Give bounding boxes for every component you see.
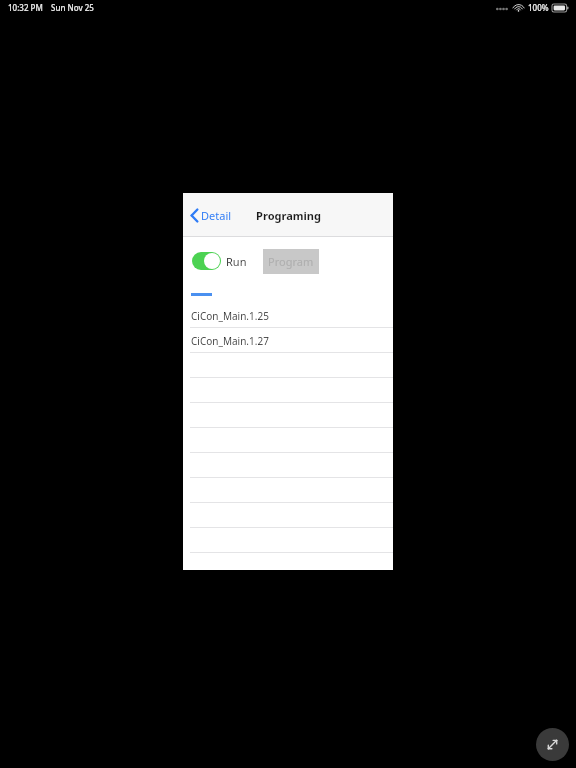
button[interactable]: Program — [263, 249, 319, 274]
button[interactable]: Detail — [187, 204, 235, 227]
button[interactable]: CiCon_Main.1.27 — [183, 328, 393, 353]
button[interactable] — [183, 528, 393, 553]
button[interactable] — [183, 503, 393, 528]
button[interactable] — [183, 378, 393, 403]
button[interactable] — [183, 403, 393, 428]
staticText: CiCon_Main.1.27 — [191, 334, 269, 348]
button[interactable] — [183, 428, 393, 453]
staticText: Programing — [256, 208, 321, 223]
button[interactable] — [183, 478, 393, 503]
staticText: Sun Nov 25 — [51, 2, 94, 13]
staticText: 100% — [528, 2, 549, 13]
button[interactable] — [183, 353, 393, 378]
button[interactable]: CiCon_Main.1.25 — [183, 303, 393, 328]
staticText: Program — [268, 254, 314, 269]
button[interactable]: Run toggle, on — [192, 252, 221, 270]
staticText: CiCon_Main.1.25 — [191, 309, 269, 323]
staticText: Run — [226, 254, 247, 269]
staticText: 10:32 PM — [8, 2, 43, 13]
button[interactable] — [183, 453, 393, 478]
button[interactable]: Expand — [536, 728, 569, 761]
staticText: Detail — [201, 208, 232, 223]
